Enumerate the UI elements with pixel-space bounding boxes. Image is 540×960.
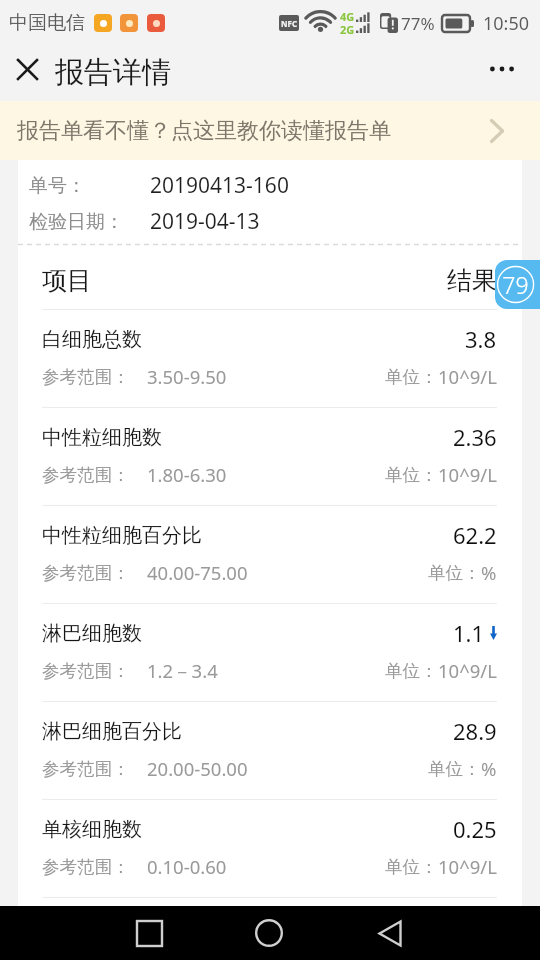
staticText: 单位：: [428, 758, 481, 780]
staticText: 参考范围：: [42, 464, 130, 486]
staticText: 报告单看不懂？点这里教你读懂报告单: [17, 117, 391, 145]
staticText: 79: [495, 269, 536, 300]
staticText: 2G: [340, 22, 355, 37]
button[interactable]: More options: [483, 45, 540, 101]
staticText: 1.80-6.30: [147, 462, 227, 487]
staticText: 10:50: [483, 11, 530, 36]
staticText: 淋巴细胞百分比: [42, 719, 182, 744]
staticText: 10^9/L: [438, 462, 497, 487]
staticText: 28.9: [453, 716, 497, 746]
staticText: NFC: [281, 18, 298, 29]
button[interactable]: 淋巴细胞数: [18, 604, 522, 701]
staticText: 参考范围：: [42, 856, 130, 878]
staticText: 0.25: [453, 814, 497, 844]
staticText: 检验日期：: [29, 210, 150, 234]
staticText: 3.8: [465, 324, 497, 354]
staticText: 10^9/L: [438, 658, 497, 683]
button[interactable]: Back: [363, 906, 417, 960]
staticText: 参考范围：: [42, 660, 130, 682]
staticText: 2019-04-13: [150, 207, 260, 236]
staticText: 结果: [447, 265, 497, 296]
staticText: 报告详情: [55, 54, 171, 91]
staticText: 1.2－3.4: [147, 658, 218, 683]
staticText: 参考范围：: [42, 366, 130, 388]
staticText: %: [481, 756, 497, 781]
staticText: 单位：: [385, 660, 438, 682]
button[interactable]: 淋巴细胞百分比: [18, 702, 522, 799]
staticText: 3.50-9.50: [147, 364, 227, 389]
button[interactable]: Recents: [122, 906, 176, 960]
button[interactable]: 报告单看不懂？点这里教你读懂报告单: [0, 101, 540, 160]
staticText: 4G: [340, 9, 355, 24]
staticText: 单核细胞数: [42, 817, 142, 842]
button[interactable]: 中性粒细胞数: [18, 408, 522, 505]
staticText: 0.10-0.60: [147, 854, 227, 879]
staticText: 项目: [42, 265, 92, 296]
staticText: 77%: [401, 12, 435, 35]
staticText: 单位：: [428, 562, 481, 584]
staticText: 2.36: [453, 422, 497, 452]
button[interactable]: Close: [0, 45, 55, 101]
staticText: 中性粒细胞百分比: [42, 523, 202, 548]
staticText: 20190413-160: [150, 171, 289, 200]
staticText: 单位：: [385, 856, 438, 878]
staticText: 参考范围：: [42, 758, 130, 780]
staticText: 10^9/L: [438, 854, 497, 879]
staticText: 单号：: [29, 174, 150, 198]
staticText: 40.00-75.00: [147, 560, 248, 585]
staticText: 中国电信: [9, 11, 85, 35]
staticText: 白细胞总数: [42, 327, 142, 352]
staticText: 62.2: [453, 520, 497, 550]
staticText: 参考范围：: [42, 562, 130, 584]
staticText: 1.1: [453, 618, 485, 648]
button[interactable]: 单核细胞数: [18, 800, 522, 897]
staticText: 20.00-50.00: [147, 756, 248, 781]
button[interactable]: 中性粒细胞百分比: [18, 506, 522, 603]
button[interactable]: 白细胞总数: [18, 310, 522, 407]
button[interactable]: Home: [242, 906, 296, 960]
staticText: 中性粒细胞数: [42, 425, 162, 450]
staticText: 10^9/L: [438, 364, 497, 389]
staticText: 单位：: [385, 464, 438, 486]
button[interactable]: Health score 79: [495, 260, 540, 309]
staticText: 单位：: [385, 366, 438, 388]
staticText: %: [481, 560, 497, 585]
staticText: 淋巴细胞数: [42, 621, 142, 646]
